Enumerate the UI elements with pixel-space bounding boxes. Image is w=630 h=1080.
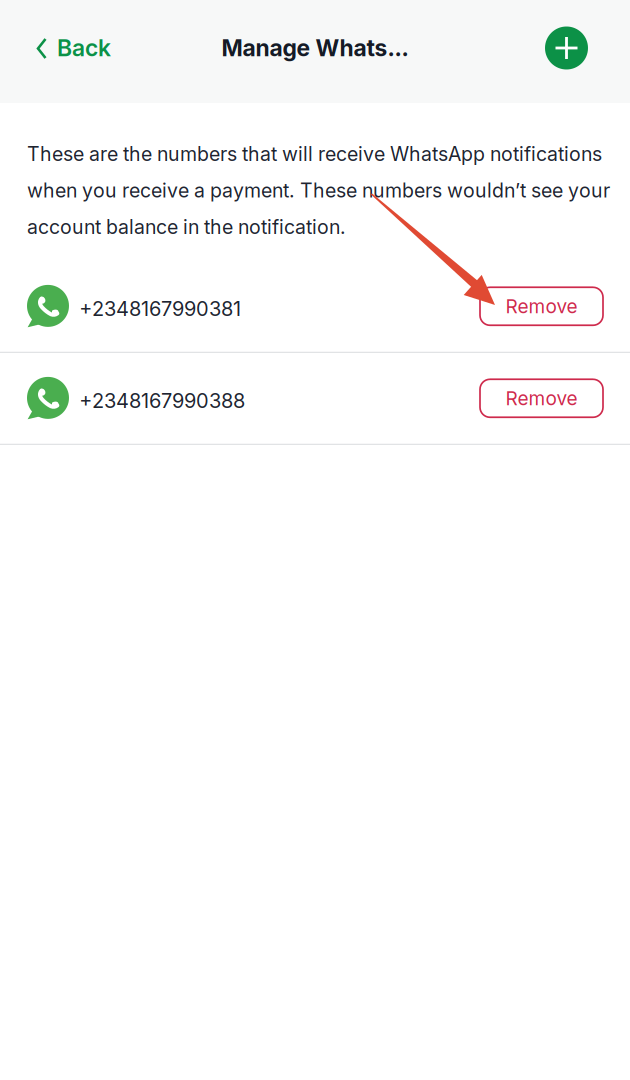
staticText: Back — [57, 34, 111, 62]
button[interactable]: Remove — [480, 379, 603, 417]
staticText: +2348167990381 — [79, 297, 241, 321]
button[interactable]: Add number — [545, 0, 630, 96]
staticText: Manage Whats... — [221, 34, 408, 62]
staticText: These are the numbers that will receive … — [27, 142, 610, 239]
staticText: +2348167990388 — [79, 389, 245, 413]
staticText: Remove — [505, 295, 577, 318]
button[interactable]: Remove — [480, 287, 603, 325]
button[interactable]: Back — [0, 0, 129, 96]
staticText: Remove — [505, 387, 577, 410]
